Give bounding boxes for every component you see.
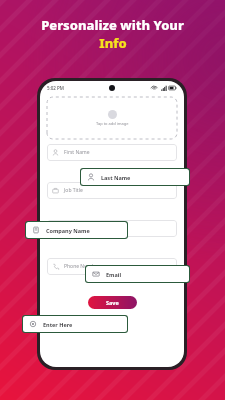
button[interactable]: Phone Number bbox=[47, 258, 177, 275]
staticText: Company Slogan bbox=[64, 225, 104, 232]
button[interactable]: Company Slogan bbox=[47, 220, 177, 237]
staticText: Personalize with Your bbox=[41, 16, 184, 34]
staticText: First Name bbox=[64, 149, 90, 156]
button[interactable]: First Name bbox=[47, 144, 177, 161]
button[interactable]: Save bbox=[88, 296, 137, 309]
staticText: Phone Number bbox=[64, 263, 100, 270]
staticText: Enter Here bbox=[43, 321, 73, 328]
staticText: Tap to add image bbox=[96, 121, 129, 126]
button[interactable]: Job Title bbox=[47, 182, 177, 199]
button[interactable]: Email bbox=[86, 266, 189, 282]
staticText: Job Title bbox=[64, 187, 83, 194]
staticText: 5:02 PM bbox=[47, 85, 64, 91]
staticText: Save bbox=[106, 299, 119, 306]
button[interactable]: Enter Here bbox=[23, 316, 127, 332]
staticText: Email bbox=[106, 271, 122, 278]
button[interactable]: Company Name bbox=[26, 222, 127, 238]
staticText: Company Name bbox=[46, 227, 90, 234]
staticText: Info bbox=[99, 34, 127, 52]
staticText: Last Name bbox=[101, 174, 131, 181]
button[interactable]: Last Name bbox=[81, 169, 189, 185]
button[interactable]: Tap to add image bbox=[47, 97, 177, 139]
